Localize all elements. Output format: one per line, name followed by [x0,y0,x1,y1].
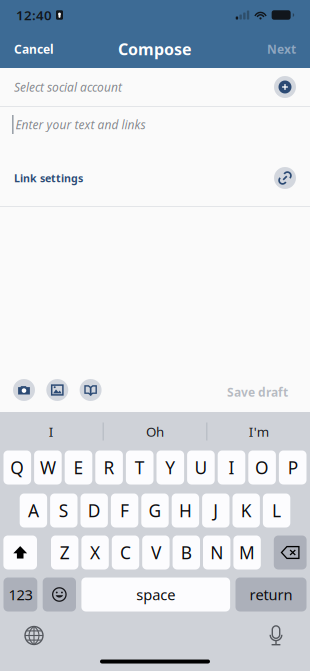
button[interactable]: Add photo [46,379,68,401]
button[interactable]: Library [80,379,102,401]
button[interactable]: Select social account [0,68,310,106]
staticText: D [88,499,101,522]
staticText: G [148,499,161,522]
button[interactable]: Switch keyboard [12,618,56,652]
staticText: I [49,423,54,440]
staticText: W [40,456,56,479]
button[interactable]: E [65,450,92,484]
staticText: J [213,499,218,522]
staticText: B [181,541,192,564]
button[interactable]: D [80,493,108,527]
staticText: 12:40 [16,6,52,24]
staticText: E [73,456,83,479]
staticText: C [120,541,131,564]
staticText: I [228,456,234,479]
button[interactable]: Take photo [13,379,35,401]
staticText: Cancel [14,41,54,57]
staticText: Select social account [14,79,122,95]
staticText: R [104,456,115,479]
staticText: O [255,456,269,479]
button[interactable]: I [0,412,103,450]
staticText: P [288,456,298,479]
button[interactable]: Save draft [217,375,297,405]
button[interactable]: 123 [3,577,37,611]
staticText: Next [267,41,296,57]
staticText: Link settings [14,171,83,185]
button[interactable]: N [203,535,230,569]
button[interactable]: M [233,535,261,569]
button[interactable]: Shift [3,535,37,569]
button[interactable]: X [81,535,109,569]
button[interactable]: K [232,493,260,527]
button[interactable]: Z [51,535,78,569]
button[interactable]: R [95,450,123,484]
staticText: Y [165,456,175,479]
staticText: Enter your text and links [16,116,146,132]
button[interactable]: return [235,577,306,611]
staticText: N [210,541,223,564]
staticText: 123 [8,585,32,604]
staticText: A [28,499,39,522]
staticText: Q [10,456,24,479]
staticText: V [151,541,161,564]
staticText: Z [60,541,70,564]
button[interactable]: P [279,450,306,484]
button[interactable]: Delete [274,535,307,569]
button[interactable]: S [50,493,77,527]
button[interactable]: L [263,493,290,527]
button[interactable]: Q [3,450,31,484]
staticText: M [239,541,255,564]
button[interactable]: F [111,493,138,527]
staticText: Oh [146,423,164,440]
button[interactable]: Next [253,30,310,68]
button[interactable]: I [218,450,245,484]
button[interactable]: space [81,577,230,611]
button[interactable]: U [187,450,215,484]
button[interactable]: B [173,535,200,569]
button[interactable]: H [172,493,199,527]
button[interactable]: Cancel [0,30,68,68]
button[interactable]: A [20,493,47,527]
button[interactable]: Dictate [254,618,298,652]
button[interactable]: O [248,450,276,484]
button[interactable]: W [34,450,62,484]
staticText: Save draft [227,384,288,400]
staticText: I'm [249,423,269,440]
button[interactable]: V [142,535,170,569]
button[interactable]: Emoji [43,577,76,611]
staticText: return [249,585,292,604]
button[interactable]: Link settings [0,150,310,206]
staticText: F [120,499,129,522]
staticText: T [135,456,145,479]
button[interactable]: J [202,493,229,527]
staticText: U [194,456,207,479]
button[interactable]: T [126,450,153,484]
staticText: Compose [118,38,192,60]
staticText: S [59,499,69,522]
button[interactable]: Oh [104,412,206,450]
button[interactable]: C [112,535,139,569]
staticText: X [90,541,100,564]
staticText: space [136,585,175,604]
staticText: H [179,499,192,522]
button[interactable]: G [141,493,169,527]
staticText: K [241,499,252,522]
button[interactable]: I'm [207,412,310,450]
button[interactable]: Y [156,450,184,484]
staticText: L [272,499,281,522]
